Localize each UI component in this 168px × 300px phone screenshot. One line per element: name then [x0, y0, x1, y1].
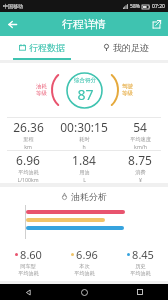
staticText: 油耗分析 [71, 191, 107, 202]
staticText: 中国移动 [3, 3, 23, 9]
staticText: 6.96 [76, 247, 98, 262]
staticText: 8.75 [128, 152, 152, 168]
button[interactable]: Back [0, 284, 56, 300]
staticText: 8.60 [20, 247, 42, 262]
button[interactable]: Back [0, 12, 24, 36]
staticText: km [24, 143, 32, 150]
staticText: 8.45 [132, 247, 154, 262]
button[interactable]: Share [144, 12, 168, 36]
staticText: 54 [133, 119, 147, 135]
staticText: 07:20 [152, 3, 165, 10]
staticText: L [83, 176, 86, 183]
staticText: 平均油耗 [18, 169, 39, 176]
staticText: 综合得分 [74, 77, 96, 84]
staticText: 00:30:15 [60, 119, 108, 135]
staticText: 平均速度 [130, 136, 151, 143]
staticText: 我的足迹 [113, 42, 149, 53]
staticText: 历史 [135, 263, 146, 270]
staticText: 消费 [135, 169, 146, 176]
staticText: 58% [130, 3, 140, 10]
button[interactable]: Recent apps [112, 284, 168, 300]
button[interactable]: 我的足迹 [84, 36, 168, 58]
staticText: 6.96 [16, 152, 40, 168]
staticText: 里程 [23, 136, 34, 143]
staticText: 等级 [36, 90, 47, 97]
button[interactable]: 行程数据 [0, 36, 84, 58]
staticText: 耗时 [79, 136, 90, 143]
staticText: 行程数据 [29, 42, 65, 53]
staticText: 87 [77, 85, 94, 104]
staticText: ¥ [139, 176, 142, 183]
staticText: 平均油耗 [18, 270, 39, 277]
staticText: 平均油耗 [74, 270, 95, 277]
staticText: 平均油耗 [130, 270, 151, 277]
staticText: 行程详情 [62, 17, 106, 31]
staticText: L/100km [17, 176, 39, 183]
staticText: 26.36 [13, 119, 44, 135]
staticText: 用油 [79, 169, 90, 176]
staticText: 等级 [122, 90, 133, 97]
button[interactable]: Home [56, 284, 112, 300]
staticText: h [82, 143, 86, 150]
staticText: 1.84 [72, 152, 96, 168]
staticText: 本次 [79, 263, 90, 270]
staticText: km/h [134, 143, 147, 150]
staticText: 驾驶 [122, 83, 133, 90]
staticText: 油耗 [36, 83, 47, 90]
staticText: 同车型 [20, 263, 36, 270]
